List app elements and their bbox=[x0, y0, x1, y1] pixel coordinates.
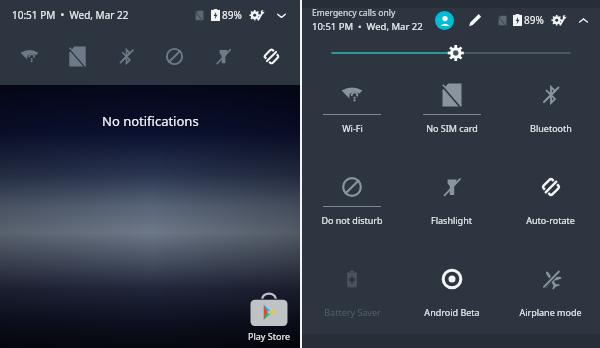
button[interactable]: Auto-rotate bbox=[256, 41, 286, 71]
button[interactable]: Flashlight bbox=[208, 41, 238, 71]
button[interactable]: Edit bbox=[468, 13, 482, 27]
button[interactable]: Settings bbox=[551, 13, 566, 28]
staticText: 10:51 PM • Wed, Mar 22 bbox=[12, 8, 129, 22]
button[interactable]: Do not disturb bbox=[159, 41, 189, 71]
button[interactable]: Airplane mode bbox=[501, 260, 600, 332]
button[interactable]: No SIM card bbox=[62, 41, 92, 71]
staticText: Bluetooth bbox=[530, 122, 572, 134]
button[interactable]: Settings bbox=[249, 8, 264, 23]
staticText: 89% bbox=[222, 8, 242, 22]
button[interactable]: Wi-Fi bbox=[302, 76, 402, 148]
staticText: Emergency calls only bbox=[312, 7, 396, 19]
staticText: 89% bbox=[524, 13, 544, 27]
button[interactable]: User bbox=[435, 11, 454, 30]
button[interactable]: Expand bbox=[275, 9, 288, 22]
staticText: No notifications bbox=[102, 112, 199, 130]
staticText: Auto-rotate bbox=[526, 214, 575, 226]
staticText: 10:51 PM • Wed, Mar 22 bbox=[312, 20, 423, 33]
button[interactable]: No SIM card bbox=[402, 76, 501, 148]
button[interactable]: Bluetooth bbox=[111, 41, 141, 71]
button[interactable]: Play Store bbox=[248, 293, 290, 342]
staticText: Android Beta bbox=[424, 306, 480, 318]
staticText: Flashlight bbox=[431, 214, 472, 226]
button[interactable]: Collapse bbox=[577, 14, 590, 27]
button[interactable]: Wi-Fi bbox=[14, 41, 44, 71]
button[interactable]: Brightness bbox=[332, 36, 570, 70]
button[interactable]: Do not disturb bbox=[302, 168, 402, 240]
staticText: Airplane mode bbox=[519, 306, 582, 318]
staticText: Wi-Fi bbox=[342, 122, 363, 134]
staticText: Battery Saver bbox=[324, 306, 381, 318]
button[interactable]: Bluetooth bbox=[501, 76, 600, 148]
button[interactable]: Android Beta bbox=[402, 260, 501, 332]
button[interactable]: Flashlight bbox=[402, 168, 501, 240]
staticText: Do not disturb bbox=[321, 214, 383, 226]
staticText: No SIM card bbox=[426, 122, 478, 134]
staticText: Play Store bbox=[248, 330, 290, 342]
button[interactable]: Auto-rotate bbox=[501, 168, 600, 240]
button[interactable]: Battery Saver bbox=[302, 260, 402, 332]
